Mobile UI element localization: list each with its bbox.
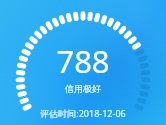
staticText: 评估时间:2018-12-06 xyxy=(40,107,126,119)
button[interactable]: Credit score 788, excellent credit xyxy=(0,0,166,125)
staticText: 信用极好 xyxy=(65,83,101,94)
staticText: 788 xyxy=(56,40,110,82)
